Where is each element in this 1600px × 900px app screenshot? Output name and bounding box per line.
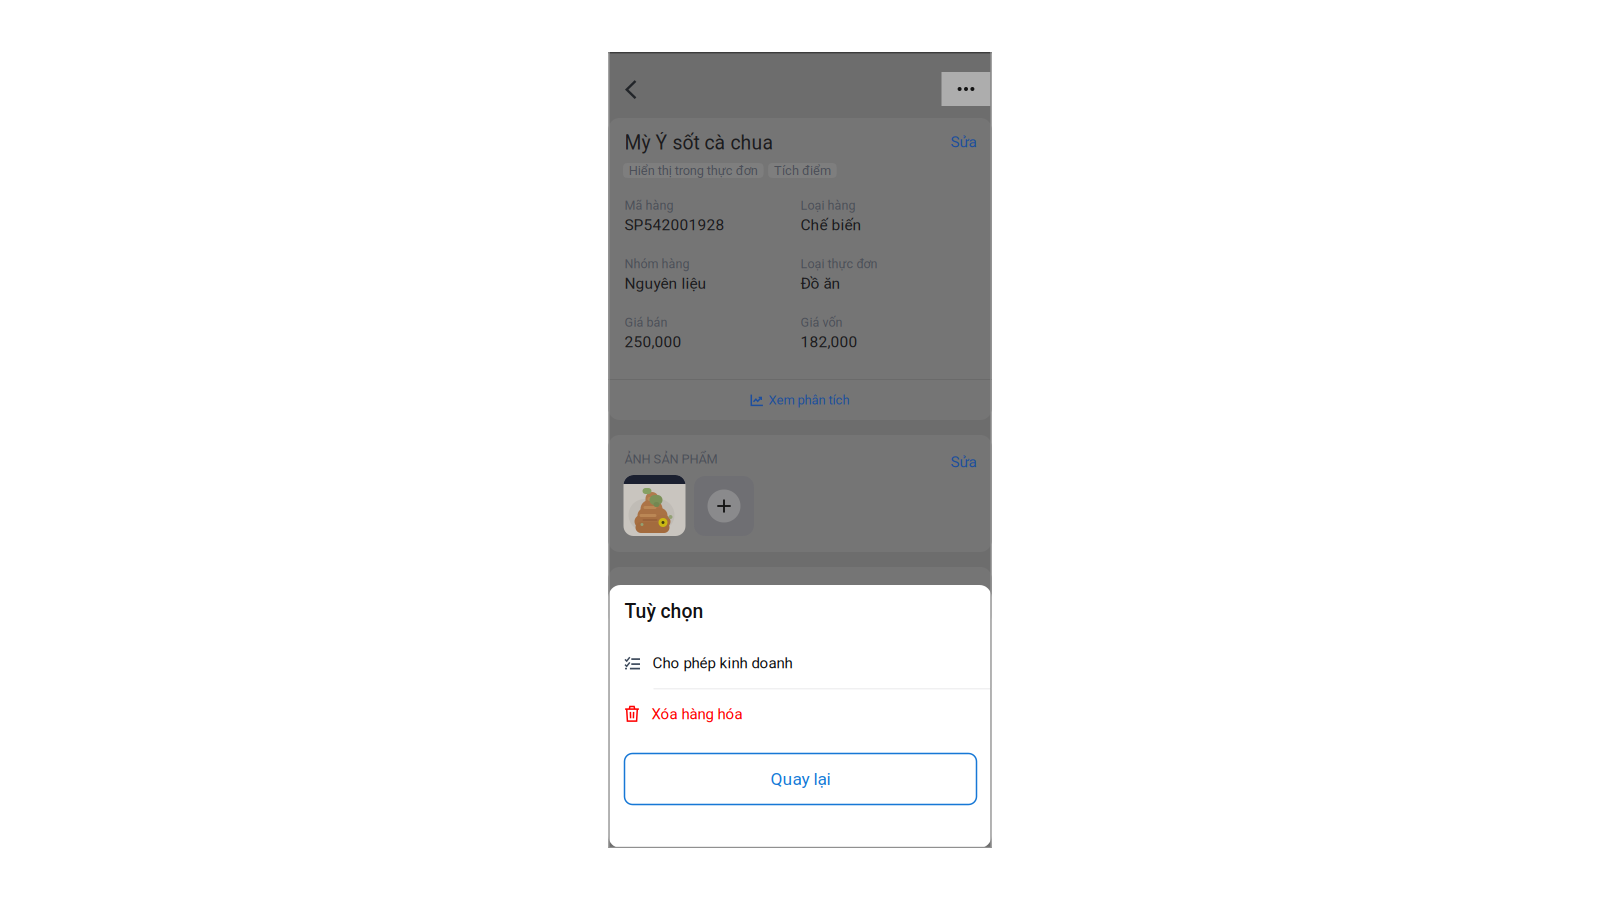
staticText: Nhóm hàng	[624, 257, 689, 271]
staticText: Giá vốn	[800, 315, 842, 330]
button[interactable]: Xem phân tích	[608, 378, 991, 422]
button[interactable]: Back	[614, 71, 648, 109]
staticText: Tuỳ chọn	[624, 600, 703, 623]
button[interactable]: Sửa	[944, 453, 976, 471]
staticText: Tích điểm	[774, 163, 831, 178]
staticText: 182,000	[800, 333, 857, 351]
button[interactable]: More options	[941, 72, 990, 106]
button[interactable]: Xóa hàng hóa	[608, 688, 991, 740]
staticText: 250,000	[624, 333, 681, 351]
staticText: Mỳ Ý sốt cà chua	[624, 132, 773, 154]
button[interactable]: Product photo	[623, 475, 685, 536]
staticText: Quay lại	[770, 769, 830, 789]
staticText: Đồ ăn	[800, 274, 840, 292]
staticText: Loại hàng	[800, 198, 855, 213]
button[interactable]: Sửa	[944, 133, 976, 151]
staticText: Hiển thị trong thực đơn	[629, 163, 758, 178]
staticText: Xóa hàng hóa	[651, 705, 742, 723]
button[interactable]: Add photo	[694, 476, 754, 536]
staticText: Xem phân tích	[768, 392, 849, 408]
staticText: Sửa	[950, 453, 976, 471]
staticText: Nguyên liệu	[624, 274, 706, 292]
staticText: Giá bán	[624, 315, 667, 330]
staticText: Sửa	[950, 133, 976, 151]
staticText: Loại thực đơn	[800, 257, 877, 271]
staticText: Chế biến	[800, 216, 861, 234]
staticText: SP542001928	[624, 216, 724, 234]
staticText: Cho phép kinh doanh	[652, 654, 792, 672]
button[interactable]: Quay lại	[624, 753, 976, 804]
button[interactable]: Cho phép kinh doanh	[608, 640, 991, 686]
staticText: ẢNH SẢN PHẨM	[624, 451, 717, 466]
staticText: Mã hàng	[624, 198, 673, 213]
